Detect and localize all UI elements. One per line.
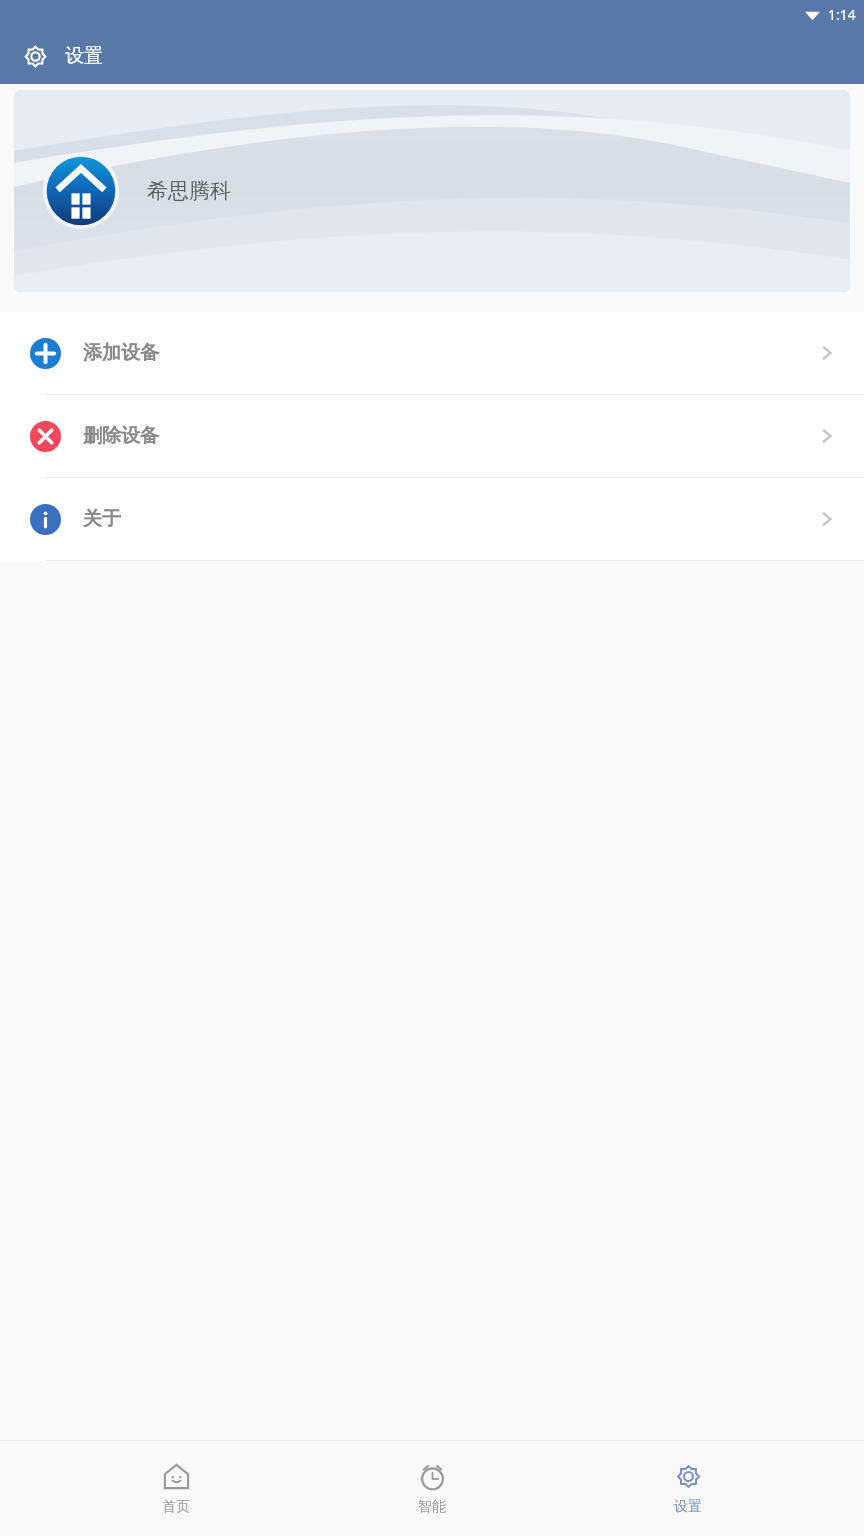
button[interactable]: 智能: [352, 1456, 512, 1522]
button[interactable]: 首页: [96, 1456, 256, 1522]
staticText: 设置: [65, 44, 103, 68]
button[interactable]: 关于: [0, 478, 864, 560]
staticText: 希思腾科: [147, 178, 231, 204]
staticText: 关于: [83, 507, 121, 531]
staticText: 设置: [674, 1498, 702, 1516]
button[interactable]: 希思腾科: [14, 90, 850, 292]
button[interactable]: 删除设备: [0, 395, 864, 477]
staticText: 添加设备: [83, 341, 159, 365]
button[interactable]: Settings: [18, 39, 52, 73]
staticText: 首页: [162, 1498, 190, 1516]
button[interactable]: 设置: [608, 1456, 768, 1522]
button[interactable]: 添加设备: [0, 312, 864, 394]
staticText: 智能: [418, 1498, 446, 1516]
staticText: 删除设备: [83, 424, 159, 448]
staticText: 1:14: [828, 5, 856, 24]
